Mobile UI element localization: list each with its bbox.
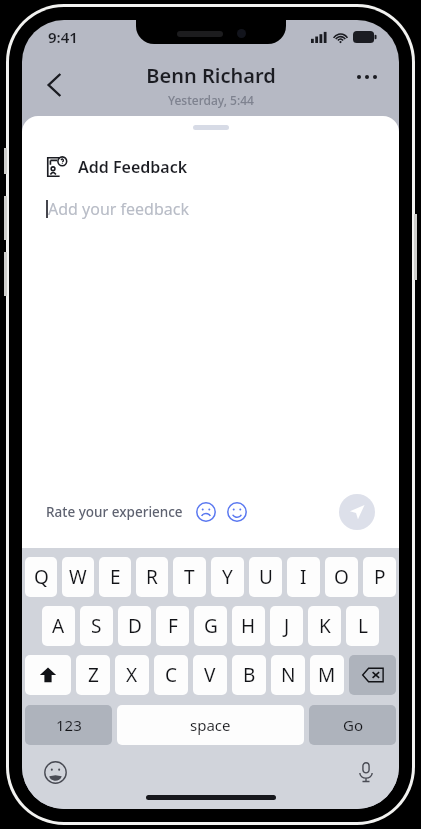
button[interactable]: T (173, 557, 206, 597)
button[interactable]: Go (309, 705, 396, 745)
button[interactable]: J (270, 606, 303, 646)
staticText: S (91, 613, 102, 639)
button[interactable]: S (80, 606, 113, 646)
staticText: Z (88, 662, 99, 688)
button[interactable]: X (115, 655, 149, 695)
staticText: L (358, 613, 368, 639)
button[interactable]: Backspace (349, 655, 396, 695)
button[interactable]: U (249, 557, 282, 597)
staticText: M (318, 662, 336, 688)
button[interactable]: Q (25, 557, 57, 597)
button[interactable]: Add your feedback (46, 198, 399, 220)
button[interactable]: Send (339, 494, 375, 530)
button[interactable]: E (99, 557, 131, 597)
button[interactable]: G (194, 606, 227, 646)
staticText: N (281, 662, 296, 688)
staticText: O (334, 564, 349, 590)
button[interactable]: P (363, 557, 396, 597)
staticText: Rate your experience (46, 503, 183, 521)
button[interactable]: W (62, 557, 94, 597)
button[interactable]: F (156, 606, 189, 646)
staticText: Yesterday, 5:44 (168, 92, 254, 108)
button[interactable]: D (118, 606, 151, 646)
staticText: Benn Richard (146, 62, 276, 89)
button[interactable]: H (232, 606, 265, 646)
button[interactable]: L (346, 606, 379, 646)
staticText: H (241, 613, 256, 639)
button[interactable]: K (308, 606, 341, 646)
button[interactable]: O (325, 557, 358, 597)
button[interactable]: N (271, 655, 305, 695)
button[interactable]: Back (32, 63, 76, 107)
staticText: space (190, 715, 231, 735)
button[interactable]: 123 (25, 705, 112, 745)
staticText: I (300, 564, 307, 590)
button[interactable]: A (42, 606, 75, 646)
button[interactable]: Shift (25, 655, 71, 695)
staticText: P (374, 564, 386, 590)
staticText: Q (34, 564, 49, 590)
staticText: V (204, 662, 216, 688)
staticText: D (128, 613, 142, 639)
staticText: U (259, 564, 273, 590)
button[interactable]: I (287, 557, 320, 597)
button[interactable]: R (136, 557, 168, 597)
button[interactable]: V (193, 655, 227, 695)
staticText: Y (222, 564, 233, 590)
button[interactable]: Emoji (38, 755, 72, 789)
button[interactable]: Rate positive (224, 499, 250, 525)
button[interactable]: C (154, 655, 188, 695)
staticText: E (110, 564, 121, 590)
staticText: A (52, 613, 65, 639)
staticText: F (168, 613, 178, 639)
button[interactable]: Rate negative (193, 499, 219, 525)
button[interactable]: Z (76, 655, 110, 695)
staticText: W (69, 564, 87, 590)
staticText: T (184, 564, 195, 590)
button[interactable]: Y (211, 557, 244, 597)
button[interactable]: M (310, 655, 344, 695)
staticText: C (165, 662, 178, 688)
staticText: 123 (56, 715, 82, 735)
staticText: Add Feedback (78, 156, 188, 178)
button[interactable]: More options (345, 55, 389, 99)
button[interactable]: space (117, 705, 304, 745)
staticText: R (146, 564, 158, 590)
staticText: G (204, 613, 218, 639)
staticText: Go (343, 715, 363, 735)
staticText: X (126, 662, 138, 688)
staticText: J (284, 613, 290, 639)
button[interactable]: B (232, 655, 266, 695)
staticText: K (319, 613, 331, 639)
staticText: 9:41 (48, 27, 78, 47)
button[interactable]: Dictation (349, 755, 383, 789)
staticText: Add your feedback (48, 198, 189, 220)
staticText: B (243, 662, 256, 688)
